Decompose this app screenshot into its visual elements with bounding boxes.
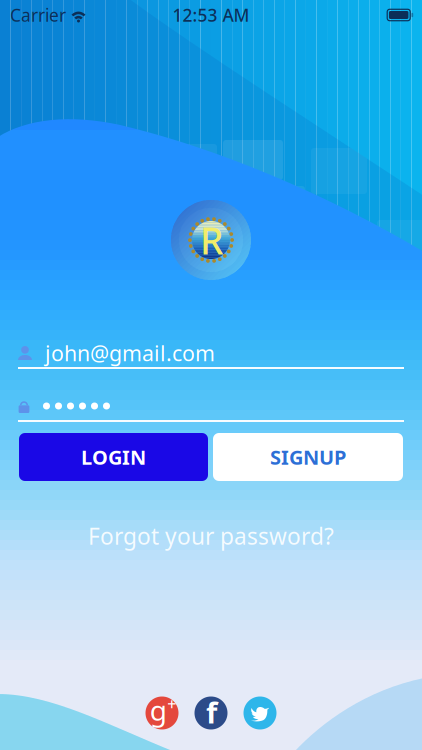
staticText: john@gmail.com bbox=[45, 339, 215, 367]
staticText: g bbox=[150, 691, 167, 729]
staticText: Carrier bbox=[10, 3, 66, 26]
staticText: SIGNUP bbox=[270, 444, 346, 470]
button[interactable]: LOGIN bbox=[19, 433, 208, 481]
button[interactable]: Sign in with Facebook bbox=[194, 696, 227, 729]
staticText: 12:53 AM bbox=[172, 3, 249, 26]
staticText: + bbox=[167, 693, 176, 715]
button[interactable]: Sign in with Twitter bbox=[243, 696, 276, 729]
staticText: Forgot your password? bbox=[88, 521, 334, 551]
button[interactable]: Sign in with Google Plus bbox=[145, 696, 178, 729]
staticText: R bbox=[200, 215, 224, 265]
staticText: LOGIN bbox=[81, 444, 146, 470]
button[interactable]: Forgot your password? bbox=[76, 515, 346, 557]
staticText: f bbox=[206, 692, 217, 731]
button[interactable]: SIGNUP bbox=[213, 433, 403, 481]
